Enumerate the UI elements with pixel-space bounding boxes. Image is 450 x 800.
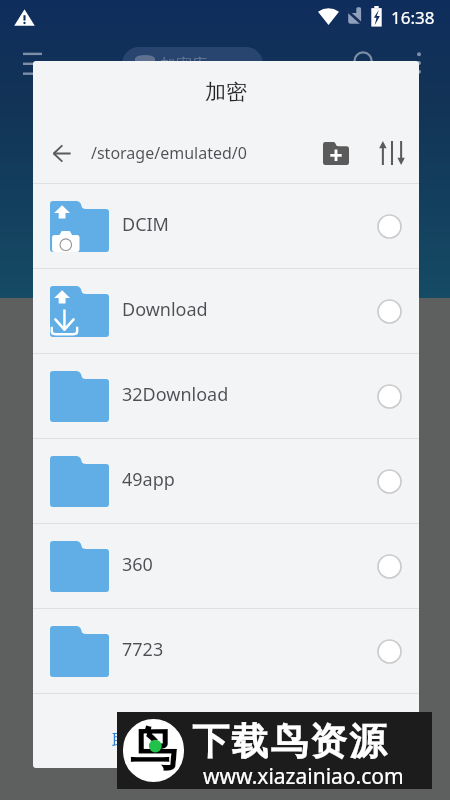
staticText: 加密 bbox=[205, 79, 247, 105]
staticText: www.xiazainiao.com bbox=[203, 762, 404, 791]
button[interactable]: 取消 bbox=[33, 694, 226, 768]
staticText: 32Download bbox=[122, 382, 229, 407]
button[interactable]: New folder bbox=[312, 129, 360, 177]
button[interactable]: 360 bbox=[33, 524, 419, 608]
button[interactable]: Download bbox=[33, 269, 419, 353]
button[interactable]: Select 32Download bbox=[366, 373, 412, 419]
button[interactable]: Select 360 bbox=[366, 543, 412, 589]
button[interactable]: 49app bbox=[33, 439, 419, 523]
button[interactable]: Select 49app bbox=[366, 458, 412, 504]
button[interactable]: 32Download bbox=[33, 354, 419, 438]
staticText: 下载鸟资源 bbox=[191, 718, 387, 765]
button[interactable]: DCIM bbox=[33, 184, 419, 268]
staticText: /storage/emulated/0 bbox=[91, 142, 247, 164]
staticText: 16:38 bbox=[391, 6, 435, 29]
staticText: 加密库 bbox=[160, 55, 208, 75]
button[interactable]: Back bbox=[38, 129, 86, 177]
staticText: 49app bbox=[122, 467, 175, 492]
staticText: DCIM bbox=[122, 212, 169, 237]
button[interactable]: Select DCIM bbox=[366, 203, 412, 249]
staticText: 确定 bbox=[305, 730, 341, 753]
button[interactable]: 确定 bbox=[226, 694, 419, 768]
button[interactable]: 7723 bbox=[33, 609, 419, 693]
staticText: 7723 bbox=[122, 637, 164, 662]
staticText: 鸟 bbox=[130, 720, 177, 779]
button[interactable]: More options bbox=[416, 52, 422, 74]
staticText: 360 bbox=[122, 552, 153, 577]
button[interactable]: Select 7723 bbox=[366, 628, 412, 674]
staticText: 取消 bbox=[112, 730, 148, 753]
button[interactable]: Menu bbox=[23, 53, 42, 75]
button[interactable]: Sort bbox=[368, 129, 416, 177]
button[interactable]: Encrypted vault selector bbox=[122, 47, 263, 81]
button[interactable]: Search bbox=[353, 51, 377, 75]
staticText: Download bbox=[122, 297, 208, 322]
button[interactable]: Select Download bbox=[366, 288, 412, 334]
